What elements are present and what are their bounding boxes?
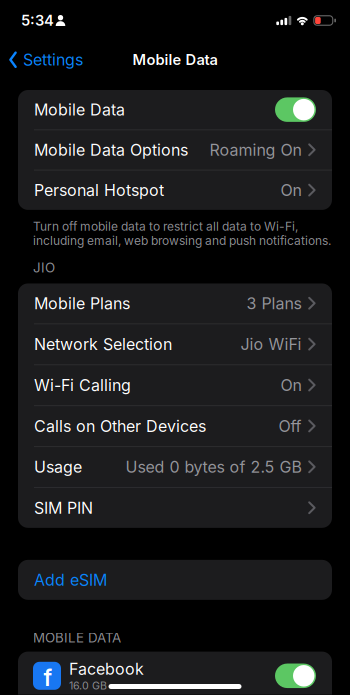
button[interactable]: Personal Hotspot (18, 171, 332, 210)
staticText: On (280, 181, 301, 200)
staticText: Jio WiFi (240, 335, 301, 354)
staticText: Wi-Fi Calling (34, 376, 131, 395)
staticText: 5:34 (21, 12, 54, 29)
staticText: MOBILE DATA (33, 630, 121, 645)
button[interactable]: Back to Settings (0, 50, 83, 69)
staticText: Mobile Data (34, 100, 125, 119)
button[interactable]: Add eSIM (18, 560, 332, 600)
staticText: Mobile Plans (34, 294, 130, 313)
staticText: Turn off mobile data to restrict all dat… (33, 219, 298, 234)
button[interactable]: Mobile Plans (18, 283, 332, 323)
staticText: including email, web browsing and push n… (33, 234, 331, 248)
staticText: Personal Hotspot (34, 181, 164, 200)
staticText: Calls on Other Devices (34, 417, 206, 436)
button[interactable]: Wi-Fi Calling (18, 365, 332, 405)
button[interactable]: Facebook mobile data on (18, 652, 332, 695)
staticText: JIO (33, 260, 55, 275)
button[interactable]: SIM PIN (18, 488, 332, 528)
staticText: 16.0 GB (69, 679, 107, 692)
button[interactable]: Mobile Data Options (18, 130, 332, 170)
staticText: Mobile Data Options (34, 140, 188, 159)
button[interactable]: Network Selection (18, 324, 332, 364)
staticText: On (280, 376, 301, 395)
staticText: Used 0 bytes of 2.5 GB (125, 458, 301, 476)
staticText: Roaming On (209, 140, 301, 159)
staticText: Network Selection (34, 335, 172, 354)
staticText: Mobile Data (132, 51, 217, 68)
staticText: Usage (34, 458, 82, 476)
staticText: SIM PIN (34, 498, 93, 517)
button[interactable]: Calls on Other Devices (18, 406, 332, 446)
staticText: Facebook (69, 660, 144, 678)
button[interactable]: Mobile Data on (18, 90, 332, 129)
staticText: 3 Plans (246, 294, 301, 313)
staticText: f (43, 664, 52, 691)
staticText: Settings (23, 50, 83, 69)
button[interactable]: Usage (18, 447, 332, 487)
staticText: Add eSIM (34, 570, 107, 589)
staticText: Off (278, 417, 301, 436)
